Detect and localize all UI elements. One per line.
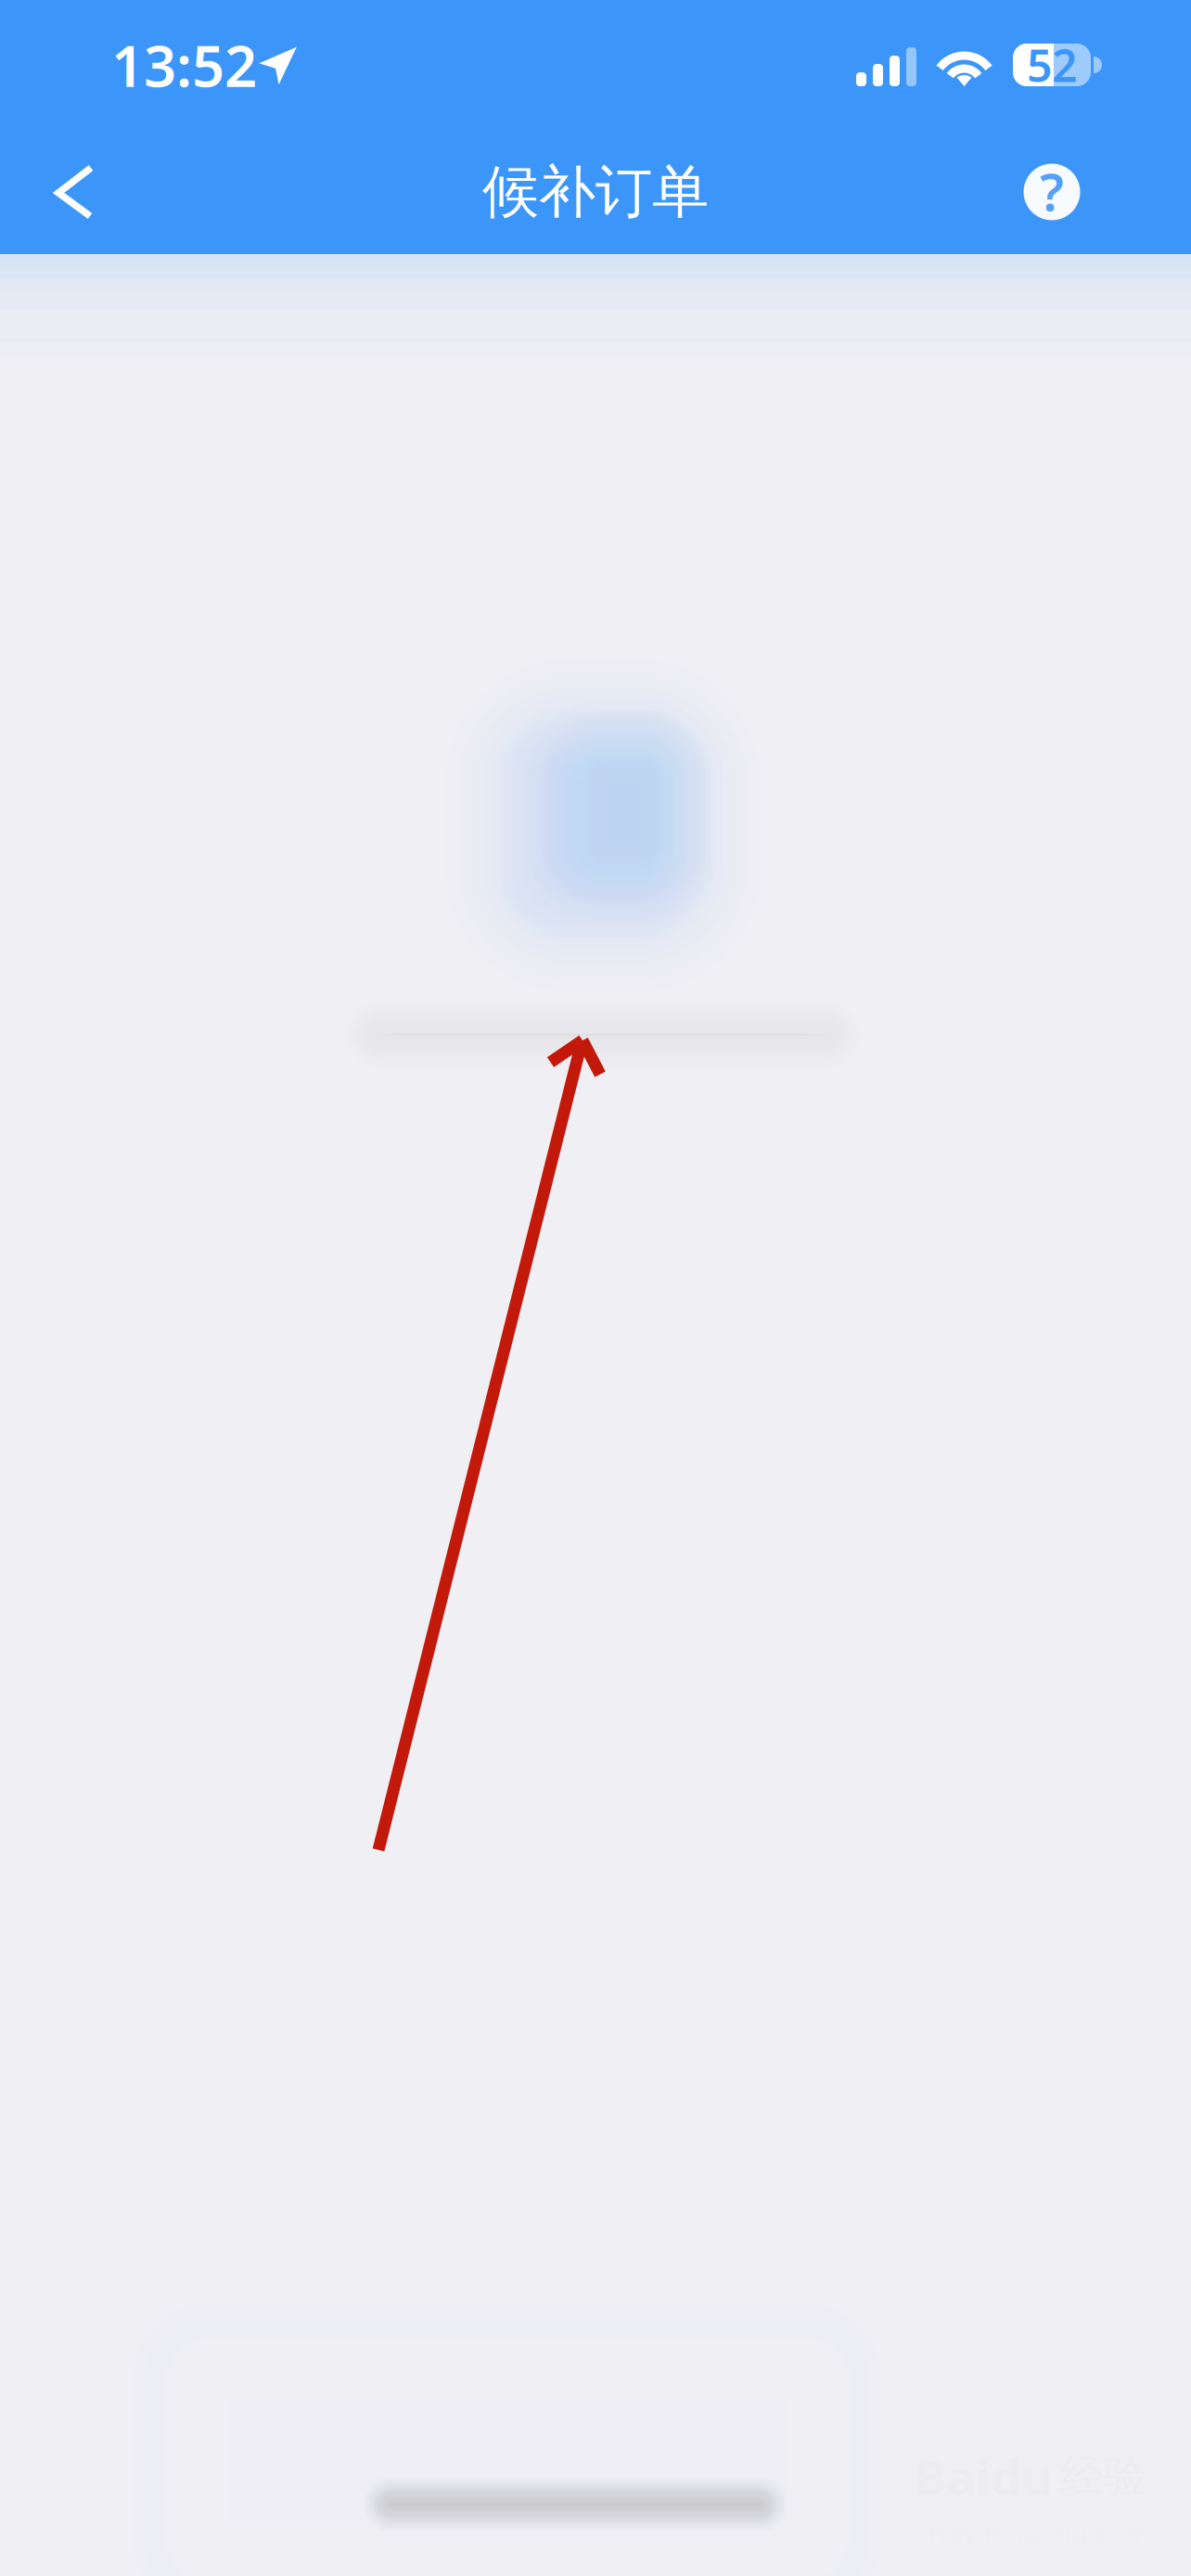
- staticText: 52: [1027, 35, 1077, 94]
- staticText: 13:52: [111, 27, 257, 103]
- button[interactable]: 返回: [22, 139, 128, 245]
- button[interactable]: 帮助: [1001, 141, 1103, 243]
- staticText: ?: [1040, 157, 1064, 226]
- staticText: 候补订单: [482, 157, 709, 227]
